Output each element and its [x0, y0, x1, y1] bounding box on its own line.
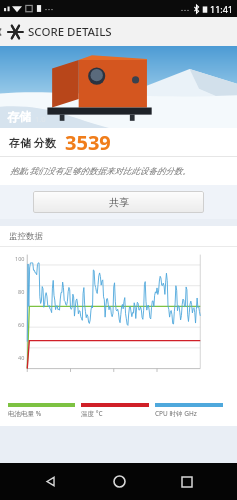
staticText: 60 — [18, 321, 25, 328]
staticText: 共享 — [109, 196, 129, 209]
staticText: 存储 分数 — [9, 135, 56, 150]
button[interactable]: Home — [100, 463, 138, 500]
staticText: 80 — [18, 288, 25, 295]
button[interactable]: Recent apps — [168, 463, 206, 500]
other: Up — [5, 23, 23, 41]
staticText: 监控数据 — [9, 231, 43, 242]
button[interactable]: Back — [31, 463, 69, 500]
staticText: 温度 °C — [81, 409, 103, 418]
staticText: SCORE DETAILS — [28, 24, 112, 40]
staticText: 电池电量 % — [8, 409, 42, 418]
staticText: 存储 — [7, 109, 31, 124]
button[interactable]: 共享 — [33, 191, 204, 213]
staticText: 抱歉,我们没有足够的数据来对比此设备的分数。 — [10, 165, 191, 177]
staticText: 100 — [15, 255, 25, 262]
staticText: 40 — [18, 354, 25, 361]
staticText: 3539 — [65, 129, 111, 156]
staticText: CPU 时钟 GHz — [155, 409, 197, 418]
staticText: 11:41 — [210, 3, 234, 15]
button[interactable]: Up — [3, 23, 114, 41]
